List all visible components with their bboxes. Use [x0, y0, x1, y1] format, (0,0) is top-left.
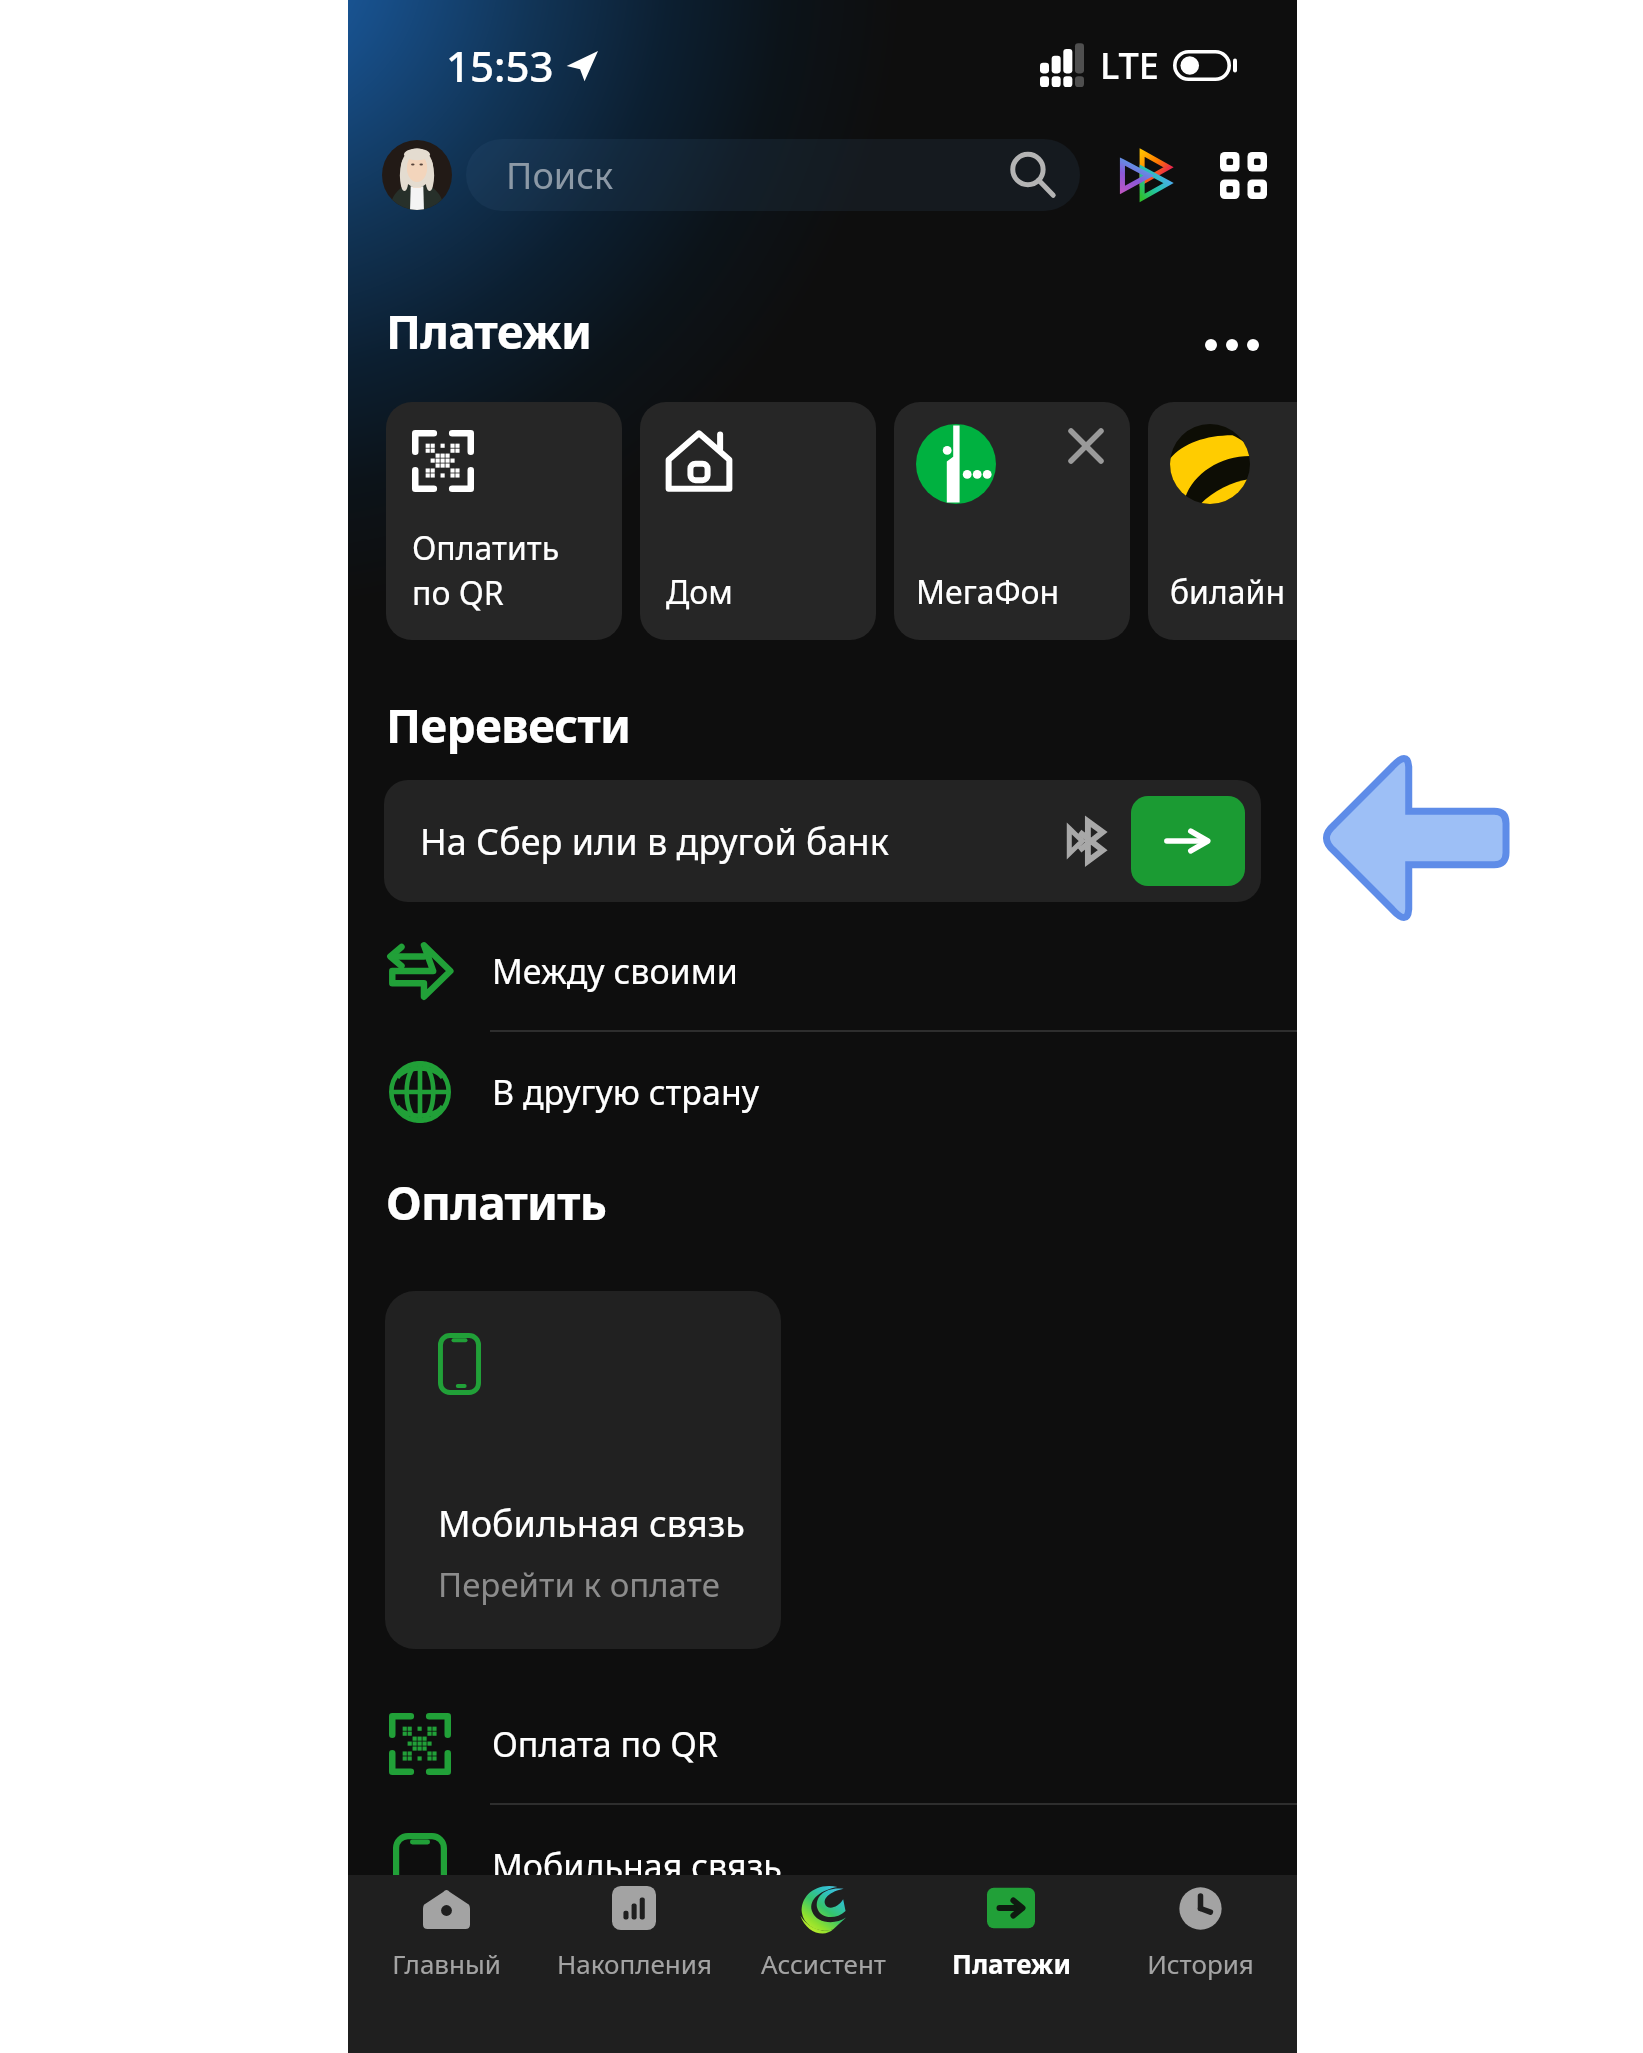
staticText: Платежи [952, 1946, 1071, 1981]
staticText: Перевести [386, 694, 631, 757]
button[interactable]: Между своими [348, 915, 1297, 1027]
staticText: Дом [666, 570, 733, 614]
staticText: 15:53 [446, 37, 554, 94]
staticText: Оплатить [386, 1171, 607, 1234]
button[interactable]: На Сбер или в другой банк [384, 780, 1261, 902]
staticText: Мобильная связь [438, 1499, 745, 1548]
staticText: Накопления [557, 1946, 712, 1981]
staticText: LTE [1100, 41, 1159, 90]
button[interactable]: Поиск [466, 139, 1080, 211]
button[interactable]: Мобильная связь [385, 1291, 781, 1649]
button[interactable]: История [1109, 1884, 1291, 1981]
staticText: Мобильная связь [492, 1843, 782, 1889]
staticText: билайн [1170, 570, 1286, 614]
button[interactable]: Continue [1131, 796, 1245, 886]
staticText: Ассистент [761, 1946, 886, 1981]
button[interactable]: Remove [1062, 422, 1110, 470]
button[interactable]: SberPrime [1110, 140, 1180, 210]
staticText: МегаФон [916, 570, 1060, 614]
button[interactable]: Дом [640, 402, 876, 640]
button[interactable]: Накопления [543, 1884, 725, 1981]
button[interactable]: Оплатить по QR [386, 402, 622, 640]
staticText: На Сбер или в другой банк [420, 817, 889, 866]
staticText: Главный [392, 1946, 501, 1981]
button[interactable]: Profile [382, 140, 452, 210]
staticText: Оплата по QR [492, 1721, 718, 1767]
staticText: История [1147, 1946, 1254, 1981]
button[interactable]: В другую страну [348, 1036, 1297, 1148]
button[interactable]: Ассистент [732, 1884, 914, 1981]
button[interactable]: More options [1197, 310, 1267, 380]
button[interactable]: Мобильная связь [348, 1810, 1297, 1922]
staticText: Перейти к оплате [438, 1562, 720, 1607]
button[interactable]: билайн [1148, 402, 1297, 640]
staticText: Поиск [506, 151, 613, 200]
button[interactable]: Главный [355, 1884, 537, 1981]
button[interactable]: All services [1208, 140, 1278, 210]
staticText: Оплатить по QR [412, 526, 560, 614]
staticText: Платежи [386, 300, 592, 363]
button[interactable]: МегаФон [894, 402, 1130, 640]
button[interactable]: Оплата по QR [348, 1688, 1297, 1800]
button[interactable]: Платежи [920, 1884, 1102, 1981]
staticText: В другую страну [492, 1069, 760, 1115]
staticText: Между своими [492, 948, 738, 994]
